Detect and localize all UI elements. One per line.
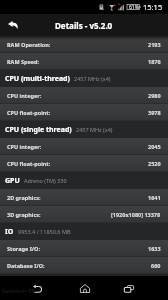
button[interactable]: RAM Operation: bbox=[0, 36, 168, 53]
staticText: CPU float-point: bbox=[7, 109, 51, 116]
staticText: 1641 bbox=[148, 194, 161, 201]
button[interactable]: Storage I/O: bbox=[0, 240, 168, 257]
staticText: CPU float-point: bbox=[7, 160, 51, 167]
button[interactable]: Back bbox=[28, 279, 47, 298]
button[interactable]: Home bbox=[75, 279, 94, 298]
staticText: 3D graphics: bbox=[7, 211, 41, 218]
button[interactable]: CPU float-point: bbox=[0, 155, 168, 172]
staticText: 660 bbox=[151, 262, 161, 269]
staticText: 2193 bbox=[148, 41, 161, 48]
staticText: Adreno (TM) 330 bbox=[24, 177, 67, 184]
button[interactable]: Recent apps bbox=[119, 279, 138, 298]
button[interactable]: CPU (multi-thread) bbox=[0, 70, 168, 87]
staticText: 2D graphics: bbox=[7, 194, 41, 201]
staticText: 2457 MHz (x4) bbox=[74, 75, 111, 82]
staticText: CPU integer: bbox=[7, 143, 42, 150]
button[interactable]: CPU float-point: bbox=[0, 104, 168, 121]
staticText: 3978 bbox=[148, 109, 161, 116]
staticText: RAM Speed: bbox=[7, 58, 40, 65]
staticText: CPU integer: bbox=[7, 92, 42, 99]
button[interactable]: CPU integer: bbox=[0, 87, 168, 104]
staticText: CPU (multi-thread) bbox=[5, 74, 70, 84]
button[interactable]: Back bbox=[3, 15, 23, 35]
button[interactable]: Database I/O: bbox=[0, 257, 168, 274]
staticText: 2457 MHz (x4) bbox=[76, 126, 113, 133]
staticText: Storage I/O: bbox=[7, 245, 41, 252]
staticText: Database I/O: bbox=[7, 262, 45, 269]
staticText: 61% bbox=[129, 4, 139, 11]
staticText: 2045 bbox=[148, 143, 161, 150]
staticText: [1920x1080] 13378 bbox=[111, 211, 161, 218]
staticText: CPU (single thread) bbox=[5, 125, 72, 135]
staticText: 9953.4 / 11850.6 MB bbox=[18, 228, 71, 235]
staticText: 2520 bbox=[148, 160, 161, 167]
button[interactable]: IO bbox=[0, 223, 168, 240]
button[interactable]: CPU (single thread) bbox=[0, 121, 168, 138]
staticText: Geektech-TB bbox=[2, 288, 35, 295]
staticText: RAM Operation: bbox=[7, 41, 51, 48]
staticText: 2980 bbox=[148, 92, 161, 99]
staticText: 1633 bbox=[148, 245, 161, 252]
staticText: IO bbox=[5, 227, 14, 237]
staticText: 1876 bbox=[148, 58, 161, 65]
staticText: 15:15 bbox=[143, 2, 163, 12]
staticText: GPU bbox=[5, 176, 20, 186]
button[interactable]: GPU bbox=[0, 172, 168, 189]
staticText: Details - v5.2.0 bbox=[55, 20, 113, 31]
button[interactable]: 2D graphics: bbox=[0, 189, 168, 206]
button[interactable]: 3D graphics: bbox=[0, 206, 168, 223]
button[interactable]: RAM Speed: bbox=[0, 53, 168, 70]
button[interactable]: CPU integer: bbox=[0, 138, 168, 155]
